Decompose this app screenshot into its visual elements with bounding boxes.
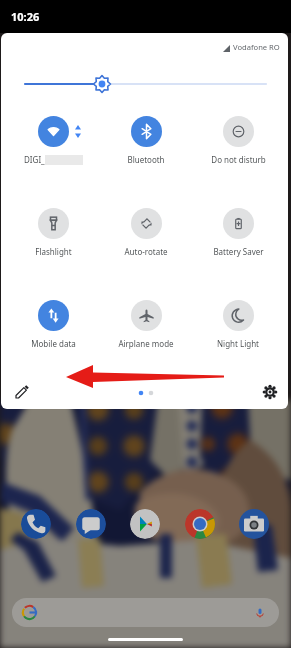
staticText: Mobile data bbox=[31, 338, 76, 349]
button[interactable]: Auto-rotate bbox=[101, 208, 191, 260]
button[interactable]: Chrome bbox=[185, 509, 215, 539]
button[interactable]: Camera bbox=[239, 509, 269, 539]
button[interactable]: Battery Saver bbox=[193, 208, 283, 260]
button[interactable]: Night Light bbox=[193, 300, 283, 352]
staticText: Airplane mode bbox=[118, 338, 174, 349]
staticText: DIGI_ bbox=[24, 154, 45, 165]
staticText: Auto-rotate bbox=[124, 246, 168, 257]
button[interactable]: DIGI_ bbox=[8, 116, 98, 168]
staticText: Vodafone RO bbox=[233, 42, 280, 52]
staticText: Night Light bbox=[217, 338, 259, 349]
staticText: Battery Saver bbox=[213, 246, 264, 257]
button[interactable]: Edit bbox=[11, 381, 33, 403]
staticText: Flashlight bbox=[35, 246, 72, 257]
button[interactable]: Messages bbox=[76, 509, 106, 539]
button[interactable]: Bluetooth bbox=[101, 116, 191, 168]
staticText: Do not disturb bbox=[211, 154, 266, 165]
staticText: 10:26 bbox=[11, 9, 40, 24]
button[interactable]: Mobile data bbox=[8, 300, 98, 352]
button[interactable]: Settings bbox=[259, 381, 281, 403]
button[interactable]: Flashlight bbox=[8, 208, 98, 260]
button[interactable]: Airplane mode bbox=[101, 300, 191, 352]
staticText: Bluetooth bbox=[127, 154, 165, 165]
button[interactable]: Phone bbox=[21, 509, 51, 539]
button[interactable]: Play Store bbox=[130, 509, 160, 539]
button[interactable] bbox=[12, 598, 279, 627]
button[interactable]: Do not disturb bbox=[193, 116, 283, 168]
